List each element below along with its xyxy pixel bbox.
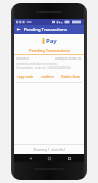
button[interactable]: Back [26, 154, 34, 162]
staticText: copy code [17, 74, 34, 79]
staticText: Pay [46, 37, 57, 45]
button[interactable]: INVOICE [14, 57, 84, 83]
button[interactable]: Delete Item [60, 73, 82, 80]
button[interactable]: confirm [40, 73, 55, 80]
staticText: confirm [41, 74, 54, 79]
staticText: INVOICE [16, 57, 29, 61]
button[interactable]: Home [45, 154, 53, 162]
staticText: UNIQUE CODE ID [55, 57, 82, 61]
staticText: Pending Transactions [29, 48, 70, 53]
staticText: Delete Item [61, 74, 81, 79]
button[interactable]: copy code [16, 73, 35, 80]
staticText: Transaction code no 1256004546945 [16, 66, 71, 70]
button[interactable]: Recent apps [65, 154, 73, 162]
button[interactable]: Back [14, 25, 23, 34]
staticText: Showing 1 record(s) [33, 147, 65, 152]
staticText: Pending Transactions [24, 27, 67, 33]
staticText: android-ambulance-invoice-circulation-20… [16, 62, 82, 66]
